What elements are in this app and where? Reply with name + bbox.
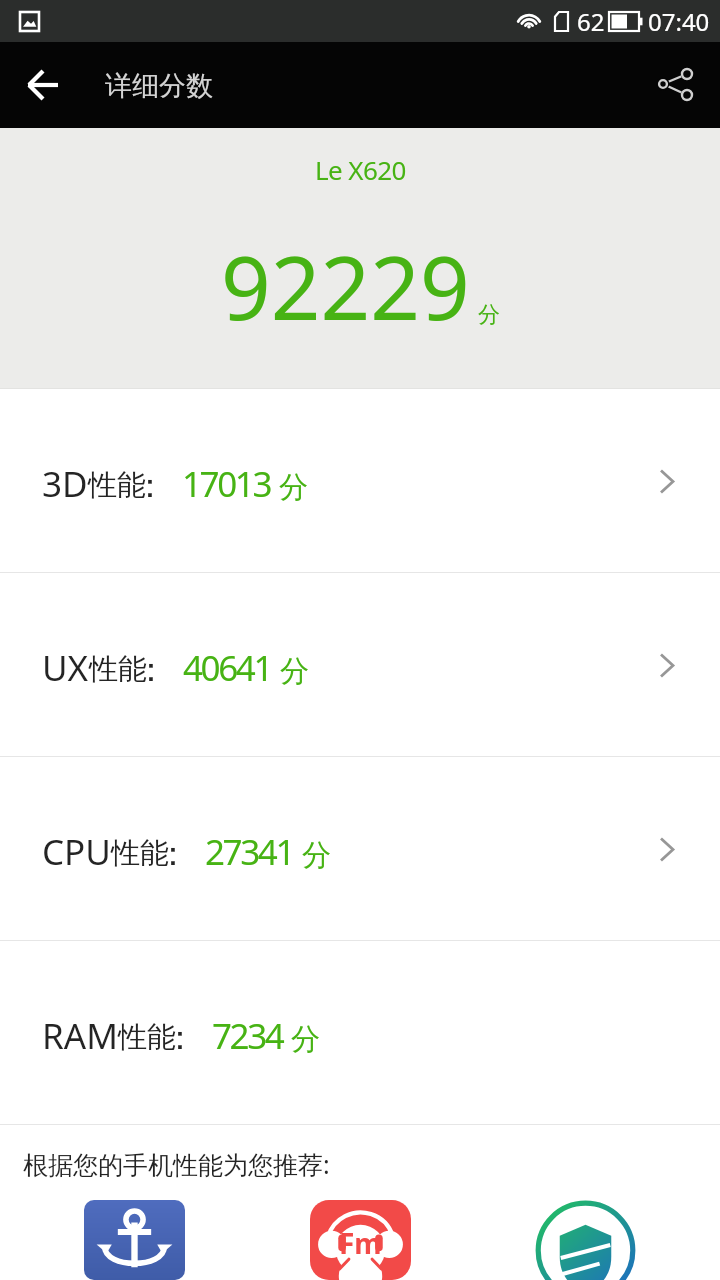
staticText: UX (42, 644, 89, 692)
button[interactable]: RAM (0, 941, 720, 1124)
button[interactable]: Share (636, 48, 710, 122)
staticText: ： (163, 1016, 197, 1059)
staticText: 分 (478, 301, 500, 329)
staticText: 详细分数 (105, 69, 213, 103)
button[interactable]: Back (6, 48, 80, 122)
staticText: ： (133, 464, 167, 507)
staticText: 27341 (205, 828, 294, 876)
staticText: 62 (577, 5, 605, 38)
staticText: CPU (42, 828, 111, 876)
button[interactable]: CPU (0, 757, 720, 940)
staticText: 性能 (88, 467, 146, 504)
staticText: 3D (42, 460, 88, 508)
staticText: 17013 (182, 460, 271, 508)
staticText: 性能 (118, 1019, 176, 1056)
staticText: 92229 (221, 227, 470, 345)
button[interactable]: UX (0, 573, 720, 756)
staticText: ： (156, 832, 190, 875)
staticText: ： (134, 648, 168, 691)
staticText: Le X620 (315, 152, 406, 187)
staticText: 分 (279, 469, 308, 506)
staticText: 7234 (212, 1012, 283, 1060)
button[interactable]: Anchor app (84, 1200, 185, 1280)
button[interactable]: Security app (535, 1200, 636, 1280)
button[interactable]: 3D (0, 389, 720, 572)
staticText: 性能 (111, 835, 169, 872)
staticText: 分 (302, 837, 331, 874)
staticText: Fm (339, 1224, 382, 1262)
staticText: RAM (42, 1012, 118, 1060)
staticText: 分 (280, 653, 309, 690)
button[interactable]: FM radio app (310, 1200, 411, 1280)
staticText: 性能 (89, 651, 147, 688)
staticText: 根据您的手机性能为您推荐: (23, 1147, 330, 1181)
staticText: 07:40 (648, 5, 710, 38)
staticText: 分 (291, 1021, 320, 1058)
staticText: 40641 (183, 644, 272, 692)
